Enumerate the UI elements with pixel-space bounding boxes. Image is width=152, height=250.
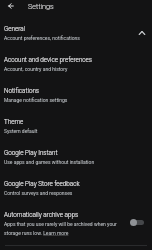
staticText: Account, country and history [4, 66, 68, 72]
staticText: Theme [4, 118, 24, 125]
staticText: Google Play Instant [4, 149, 58, 156]
staticText: Use apps and games without installation [4, 159, 95, 165]
staticText: Notifications [4, 87, 40, 94]
button[interactable]: Account and device preferences [0, 52, 152, 83]
staticText: Manage notification settings [4, 97, 68, 103]
staticText: System default [4, 128, 38, 134]
staticText: Apps that you use rarely will be archive… [4, 221, 122, 236]
staticText: Google Play Store feedback [4, 180, 80, 187]
staticText: Automatically archive apps [4, 211, 79, 218]
staticText: General [4, 25, 26, 32]
staticText: Control surveys and responses [4, 190, 73, 196]
staticText: Account preferences, notifications [4, 35, 80, 41]
button[interactable]: Google Play Instant [0, 145, 152, 176]
button[interactable]: Back [3, 0, 19, 14]
button[interactable]: Theme [0, 114, 152, 145]
button[interactable]: Automatically archive apps toggle [130, 218, 145, 227]
button[interactable]: Automatically archive apps [0, 207, 152, 245]
button[interactable]: Notifications [0, 83, 152, 114]
staticText: Settings [28, 2, 54, 10]
button[interactable]: General [0, 21, 152, 52]
button[interactable]: Google Play Store feedback [0, 176, 152, 207]
staticText: Account and device preferences [4, 56, 93, 63]
